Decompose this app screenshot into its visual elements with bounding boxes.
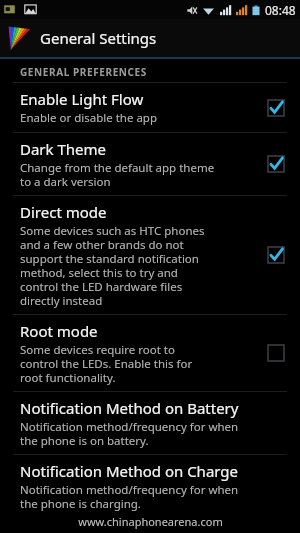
button[interactable]: Root mode bbox=[0, 315, 300, 391]
button[interactable]: Dark Theme bbox=[262, 150, 290, 178]
staticText: Notification method/frequency for when t… bbox=[20, 419, 239, 448]
button[interactable]: Dark Theme bbox=[0, 133, 300, 195]
staticText: General Settings bbox=[40, 28, 157, 48]
staticText: GENERAL PREFERENCES bbox=[20, 65, 147, 79]
staticText: Change from the default app theme to a d… bbox=[20, 160, 215, 189]
button[interactable]: Root mode bbox=[262, 339, 290, 367]
staticText: Some devices such as HTC phones and a fe… bbox=[20, 223, 205, 308]
button[interactable]: Direct mode bbox=[262, 241, 290, 269]
staticText: Notification Method on Battery bbox=[20, 398, 239, 418]
staticText: www.chinaphonearena.com bbox=[78, 514, 223, 529]
button[interactable]: Notification Method on Charge bbox=[0, 455, 300, 517]
staticText: Dark Theme bbox=[20, 139, 107, 159]
staticText: Notification Method on Charge bbox=[20, 461, 239, 481]
button[interactable]: Enable Light Flow bbox=[262, 94, 290, 122]
staticText: Direct mode bbox=[20, 202, 107, 222]
button[interactable]: Direct mode bbox=[0, 196, 300, 314]
staticText: Enable or disable the app bbox=[20, 110, 158, 126]
staticText: Notification method/frequency for when t… bbox=[20, 482, 239, 511]
button[interactable]: Notification Method on Battery bbox=[0, 392, 300, 454]
staticText: Root mode bbox=[20, 321, 98, 341]
staticText: Some devices require root to control the… bbox=[20, 342, 193, 385]
staticText: 08:48 bbox=[265, 2, 296, 18]
staticText: Enable Light Flow bbox=[20, 89, 144, 109]
button[interactable]: Enable Light Flow bbox=[0, 83, 300, 132]
